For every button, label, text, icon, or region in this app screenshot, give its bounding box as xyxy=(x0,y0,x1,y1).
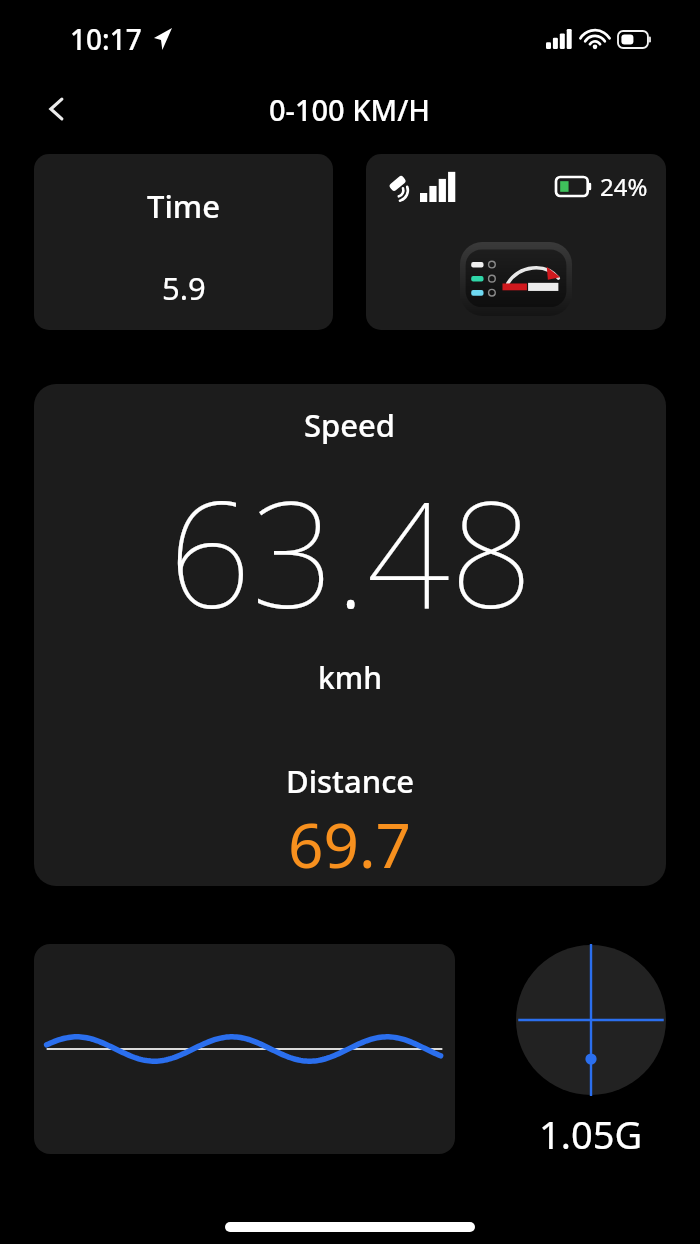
button[interactable]: Time xyxy=(34,154,333,330)
button[interactable] xyxy=(34,944,455,1154)
staticText: 10:17 xyxy=(70,20,142,58)
staticText: Distance xyxy=(286,760,415,802)
staticText: 63.48 xyxy=(168,452,533,651)
staticText: kmh xyxy=(318,657,382,698)
button[interactable]: 1.05G xyxy=(516,944,666,1160)
staticText: Speed xyxy=(304,404,396,446)
staticText: 1.05G xyxy=(539,1108,643,1160)
button[interactable]: Back xyxy=(34,86,80,132)
staticText: 5.9 xyxy=(162,267,206,309)
button[interactable]: Speed xyxy=(34,384,666,886)
staticText: Time xyxy=(147,185,220,227)
button[interactable]: 24% xyxy=(366,154,666,330)
staticText: 24% xyxy=(600,170,648,203)
staticText: 0-100 KM/H xyxy=(269,90,431,129)
staticText: 69.7 xyxy=(288,802,412,886)
